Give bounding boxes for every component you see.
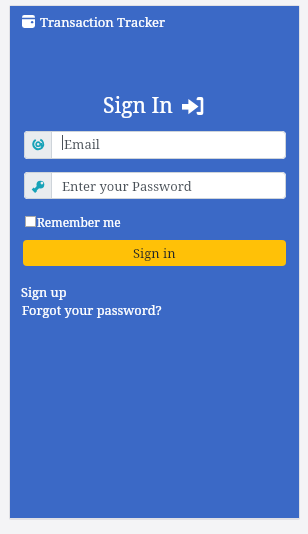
staticText: Enter your Password [62, 177, 192, 195]
button[interactable] [24, 131, 286, 159]
button[interactable] [24, 172, 286, 199]
button[interactable]: Sign up [21, 283, 67, 300]
staticText: Remember me [37, 214, 121, 230]
button[interactable] [24, 212, 134, 228]
button[interactable] [20, 13, 180, 37]
staticText: Email [64, 135, 100, 153]
staticText: Sign In [103, 91, 173, 120]
staticText: Transaction Tracker [40, 13, 166, 31]
staticText: Sign in [133, 244, 176, 262]
button[interactable]: Forgot your password? [22, 301, 162, 318]
button[interactable] [23, 240, 286, 266]
